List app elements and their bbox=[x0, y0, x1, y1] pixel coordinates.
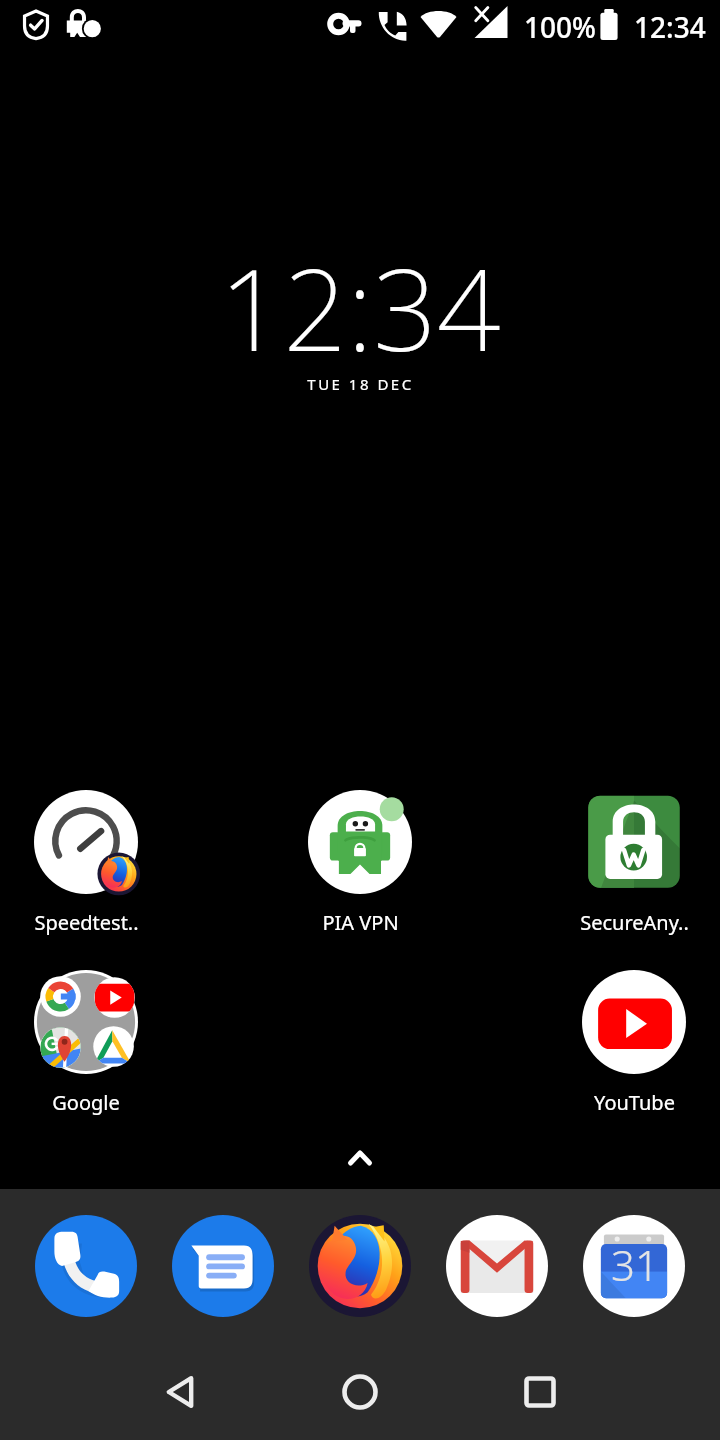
button[interactable]: Home bbox=[312, 1344, 408, 1440]
staticText: SecureAny.. bbox=[580, 909, 689, 936]
button[interactable]: Google bbox=[18, 970, 154, 1116]
button[interactable]: SecureAny.. bbox=[566, 790, 702, 936]
staticText: YouTube bbox=[594, 1089, 675, 1116]
staticText: Google bbox=[52, 1089, 120, 1116]
button[interactable]: All apps bbox=[336, 1133, 384, 1181]
button[interactable]: Firefox bbox=[309, 1215, 411, 1317]
button[interactable]: Messages bbox=[172, 1215, 274, 1317]
button[interactable]: Recents bbox=[492, 1344, 588, 1440]
button[interactable]: Back bbox=[132, 1344, 228, 1440]
button[interactable]: Speedtest.. bbox=[18, 790, 154, 936]
staticText: 12:34 bbox=[634, 8, 706, 46]
staticText: PIA VPN bbox=[322, 909, 399, 936]
button[interactable]: Gmail bbox=[446, 1215, 548, 1317]
staticText: 12:34 bbox=[219, 231, 501, 384]
button[interactable]: Phone bbox=[35, 1215, 137, 1317]
staticText: TUE 18 DEC bbox=[307, 374, 414, 394]
button[interactable]: Calendar bbox=[583, 1215, 685, 1317]
staticText: 31 bbox=[611, 1236, 659, 1293]
staticText: Speedtest.. bbox=[34, 909, 139, 936]
button[interactable]: PIA VPN bbox=[292, 790, 428, 936]
staticText: 100% bbox=[524, 8, 596, 46]
button[interactable]: YouTube bbox=[566, 970, 702, 1116]
